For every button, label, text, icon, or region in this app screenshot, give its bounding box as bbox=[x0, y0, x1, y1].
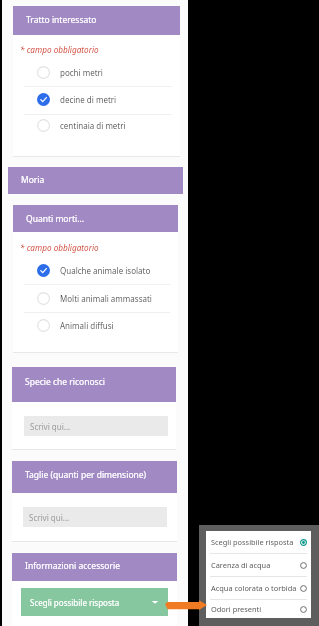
button[interactable]: centinaia di metri bbox=[13, 112, 180, 139]
button[interactable]: Qualche animale isolato bbox=[13, 257, 178, 284]
staticText: Acqua colorata o torbida bbox=[211, 583, 300, 593]
other: Expand dropdown bbox=[151, 598, 159, 606]
button[interactable]: Tratto interessato bbox=[13, 6, 180, 35]
staticText: Scegli possibile risposta bbox=[30, 597, 120, 608]
staticText: Carenza di acqua bbox=[211, 560, 300, 570]
staticText: centinaia di metri bbox=[60, 120, 126, 131]
staticText: Scrivi qui... bbox=[29, 512, 70, 523]
button[interactable]: Taglie (quanti per dimensione) bbox=[12, 461, 177, 493]
staticText: Moria bbox=[21, 174, 45, 186]
staticText: Taglie (quanti per dimensione) bbox=[25, 469, 147, 481]
staticText: Molti animali ammassati bbox=[60, 293, 152, 304]
button[interactable]: Molti animali ammassati bbox=[13, 285, 178, 312]
staticText: decine di metri bbox=[60, 94, 117, 105]
staticText: Qualche animale isolato bbox=[60, 265, 151, 276]
staticText: pochi metri bbox=[60, 67, 103, 78]
staticText: Scrivi qui... bbox=[30, 421, 71, 432]
staticText: Specie che riconosci bbox=[25, 376, 105, 388]
button[interactable]: decine di metri bbox=[13, 86, 180, 113]
button[interactable]: Scrivi qui... bbox=[23, 507, 167, 527]
staticText: * campo obbligatorio bbox=[20, 242, 99, 253]
staticText: * campo obbligatorio bbox=[20, 44, 99, 55]
staticText: Quanti morti... bbox=[26, 213, 85, 225]
button[interactable]: Moria bbox=[8, 167, 183, 194]
button[interactable]: Odori presenti bbox=[206, 600, 311, 618]
button[interactable]: Carenza di acqua bbox=[206, 554, 311, 576]
staticText: Scegli possibile risposta bbox=[211, 537, 300, 547]
button[interactable]: Scegli possibile risposta bbox=[21, 588, 168, 616]
button[interactable]: Specie che riconosci bbox=[12, 367, 176, 402]
button[interactable]: Acqua colorata o torbida bbox=[206, 577, 311, 599]
button[interactable]: Scrivi qui... bbox=[24, 416, 168, 436]
button[interactable]: Quanti morti... bbox=[13, 205, 178, 232]
other: Arrow pointing to menu option bbox=[165, 600, 207, 610]
button[interactable]: pochi metri bbox=[13, 59, 180, 86]
button[interactable]: Informazioni accessorie bbox=[12, 553, 177, 581]
staticText: Odori presenti bbox=[211, 604, 300, 614]
staticText: Informazioni accessorie bbox=[25, 560, 120, 572]
staticText: Tratto interessato bbox=[26, 14, 97, 26]
staticText: Animali diffusi bbox=[60, 320, 114, 331]
button[interactable]: Scegli possibile risposta bbox=[206, 531, 311, 553]
button[interactable]: Animali diffusi bbox=[13, 312, 178, 339]
